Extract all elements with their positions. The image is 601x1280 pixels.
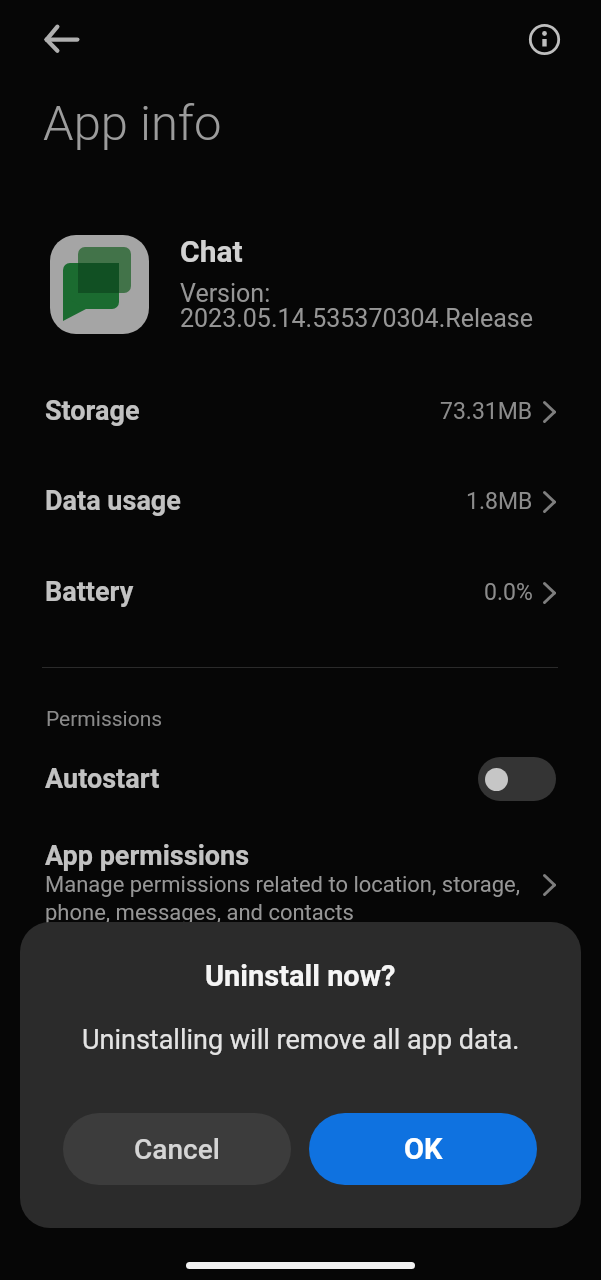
button[interactable]: OK bbox=[309, 1113, 537, 1185]
staticText: Storage bbox=[45, 395, 140, 427]
staticText: Chat bbox=[180, 234, 243, 269]
staticText: Manage permissions related to location, … bbox=[45, 872, 521, 926]
button[interactable]: Autostart bbox=[0, 751, 601, 807]
staticText: Uninstall now? bbox=[205, 959, 396, 993]
button[interactable]: Storage bbox=[0, 385, 601, 437]
button[interactable]: Cancel bbox=[63, 1113, 291, 1185]
staticText: Uninstalling will remove all app data. bbox=[82, 1024, 520, 1056]
button[interactable] bbox=[42, 22, 82, 58]
staticText: Autostart bbox=[45, 763, 160, 795]
staticText: Data usage bbox=[45, 485, 181, 517]
staticText: Permissions bbox=[46, 707, 163, 732]
button[interactable] bbox=[478, 757, 556, 801]
staticText: OK bbox=[404, 1132, 443, 1166]
staticText: App permissions bbox=[45, 840, 250, 872]
staticText: 0.0% bbox=[484, 579, 533, 606]
staticText: Cancel bbox=[134, 1133, 220, 1166]
staticText: Battery bbox=[45, 576, 134, 608]
staticText: App info bbox=[43, 95, 222, 152]
button[interactable] bbox=[528, 23, 561, 56]
staticText: Version: bbox=[180, 279, 271, 308]
button[interactable]: App permissions bbox=[0, 840, 601, 932]
button[interactable]: Battery bbox=[0, 566, 601, 618]
staticText: 2023.05.14.535370304.Release bbox=[180, 304, 533, 333]
button[interactable]: Data usage bbox=[0, 475, 601, 527]
staticText: 1.8MB bbox=[466, 488, 533, 515]
staticText: 73.31MB bbox=[440, 398, 533, 425]
